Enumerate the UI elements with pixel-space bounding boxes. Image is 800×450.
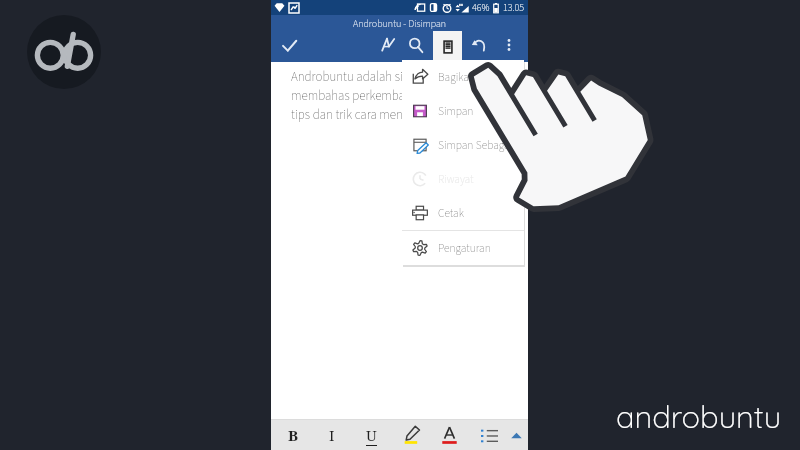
button[interactable]: Simpan Sebagai — [402, 128, 524, 162]
button[interactable]: Expand toolbar — [500, 420, 532, 450]
staticText: Simpan — [438, 103, 474, 119]
button[interactable]: Cetak — [402, 196, 524, 230]
button[interactable]: Ink — [373, 31, 401, 59]
button[interactable]: File — [433, 31, 462, 62]
staticText: Pengaturan — [438, 240, 491, 256]
button[interactable]: androbuntu — [616, 397, 782, 436]
button[interactable]: Highlight — [395, 420, 427, 450]
staticText: Androbuntu adalah situs — [291, 68, 419, 87]
staticText: Androbuntu - Disimpan — [353, 17, 447, 31]
button[interactable]: Bold — [277, 420, 309, 450]
staticText: 46% — [472, 1, 490, 15]
staticText: U — [366, 425, 377, 445]
button[interactable]: Riwayat — [402, 162, 524, 196]
staticText: 13.05 — [503, 1, 524, 15]
button[interactable]: Simpan — [402, 94, 524, 128]
staticText: B — [288, 425, 299, 445]
button[interactable]: Bullet list — [473, 420, 505, 450]
button[interactable]: More options — [495, 31, 523, 59]
button[interactable]: Search — [402, 31, 430, 59]
staticText: I — [329, 425, 335, 445]
staticText: tips dan trik cara menggu — [291, 106, 423, 125]
staticText: Cetak — [438, 205, 464, 221]
staticText: membahas perkembangan — [291, 87, 431, 106]
button[interactable]: Androbuntu logo — [27, 15, 101, 89]
button[interactable]: Underline — [355, 420, 387, 450]
button[interactable]: Font colour — [433, 420, 465, 450]
staticText: Bagikan — [438, 69, 475, 85]
staticText: Simpan Sebagai — [438, 137, 513, 153]
button[interactable]: Done — [275, 31, 303, 59]
staticText: Riwayat — [438, 171, 474, 187]
button[interactable]: Italic — [316, 420, 348, 450]
button[interactable]: Undo — [465, 31, 493, 59]
button[interactable]: Pengaturan — [402, 231, 524, 265]
button[interactable]: Bagikan — [402, 60, 524, 94]
